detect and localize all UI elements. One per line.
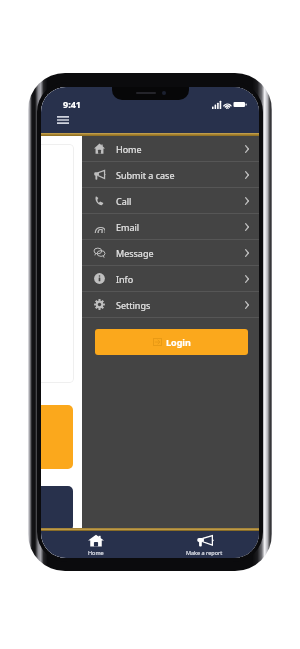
staticText: Login — [166, 336, 191, 348]
button[interactable]: Info — [82, 266, 259, 291]
staticText: Make a report — [186, 549, 223, 556]
button[interactable]: Home — [41, 531, 150, 558]
button[interactable]: Open navigation menu — [53, 111, 73, 129]
button[interactable]: @ — [82, 214, 259, 239]
button[interactable]: Call — [82, 188, 259, 213]
button[interactable]: Message — [82, 240, 259, 265]
button[interactable]: Home — [82, 136, 259, 161]
staticText: Info — [116, 273, 134, 285]
staticText: Call — [116, 195, 132, 207]
button[interactable]: Make a report — [150, 531, 259, 558]
staticText: Home — [88, 549, 104, 556]
staticText: @ — [94, 222, 105, 233]
button[interactable]: Settings — [82, 292, 259, 317]
staticText: Settings — [116, 299, 151, 311]
staticText: Home — [116, 143, 142, 155]
staticText: 9:41 — [63, 98, 81, 110]
staticText: Submit a case — [116, 169, 175, 181]
staticText: Message — [116, 247, 154, 259]
staticText: Email — [116, 221, 140, 233]
button[interactable]: Submit a case — [82, 162, 259, 187]
button[interactable]: Login — [95, 329, 248, 355]
